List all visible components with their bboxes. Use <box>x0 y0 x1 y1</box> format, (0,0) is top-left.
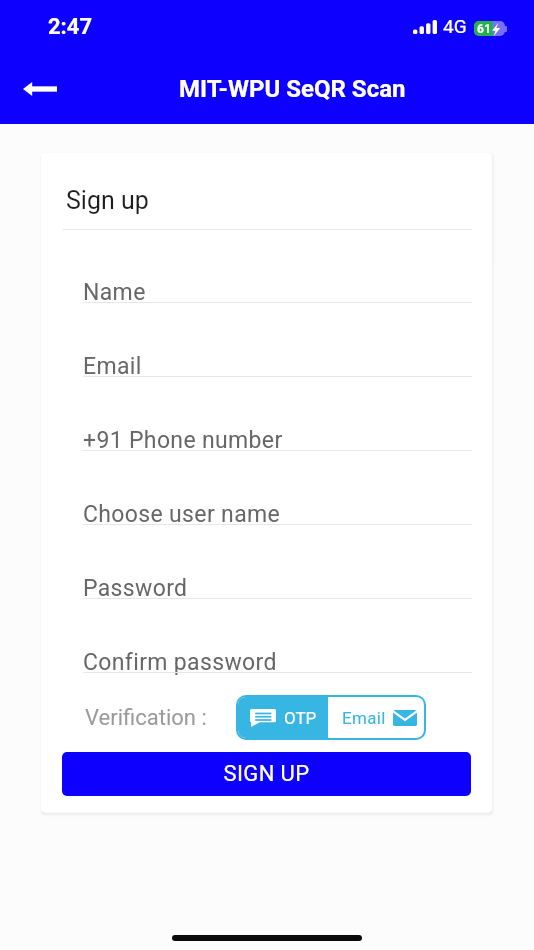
staticText: Email <box>83 353 142 380</box>
button[interactable]: Confirm password <box>83 632 472 673</box>
staticText: Sign up <box>66 186 149 215</box>
button[interactable]: Email <box>334 697 424 738</box>
staticText: Name <box>83 279 146 306</box>
staticText: 2:47 <box>48 14 93 40</box>
button[interactable]: Name <box>83 262 472 303</box>
button[interactable]: Choose user name <box>83 484 472 525</box>
staticText: Password <box>83 575 188 602</box>
staticText: 4G <box>443 15 467 37</box>
staticText: Choose user name <box>83 501 281 528</box>
button[interactable]: OTP <box>238 697 328 738</box>
button[interactable]: Password <box>83 558 472 599</box>
button[interactable]: Back <box>11 67 69 111</box>
staticText: OTP <box>284 708 317 728</box>
button[interactable]: Email <box>83 336 472 377</box>
staticText: MIT-WPU SeQR Scan <box>179 75 406 103</box>
staticText: Confirm password <box>83 649 277 676</box>
staticText: SIGN UP <box>223 761 310 787</box>
staticText: Email <box>342 708 386 728</box>
staticText: +91 Phone number <box>83 427 283 454</box>
staticText: 61 <box>477 22 491 36</box>
staticText: Verification : <box>85 705 207 731</box>
button[interactable]: SIGN UP <box>62 752 471 796</box>
button[interactable]: +91 Phone number <box>83 410 472 451</box>
